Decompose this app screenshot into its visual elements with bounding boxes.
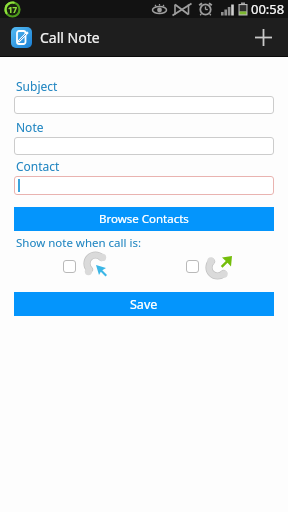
button[interactable] bbox=[244, 18, 282, 56]
staticText: Browse Contacts bbox=[99, 211, 189, 227]
staticText: Save bbox=[130, 296, 158, 313]
button[interactable]: Save bbox=[14, 292, 274, 316]
staticText: 00:58 bbox=[251, 0, 285, 18]
button[interactable]: Browse Contacts bbox=[14, 207, 274, 231]
staticText: Show note when call is: bbox=[16, 235, 142, 251]
staticText: Note bbox=[16, 119, 44, 135]
button[interactable] bbox=[63, 260, 76, 273]
staticText: 17 bbox=[8, 4, 18, 15]
staticText: Contact bbox=[16, 158, 60, 174]
staticText: Call Note bbox=[40, 28, 100, 47]
staticText: Subject bbox=[16, 78, 58, 94]
button[interactable] bbox=[186, 260, 199, 273]
